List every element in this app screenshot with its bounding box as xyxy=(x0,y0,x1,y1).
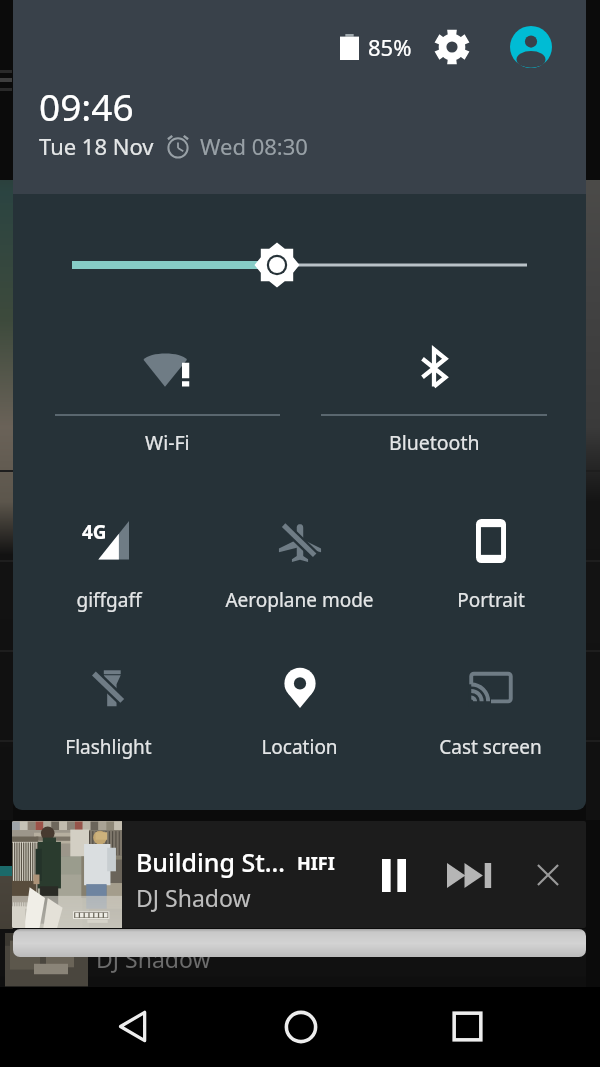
button[interactable]: Flashlight xyxy=(13,665,204,760)
button[interactable]: Settings xyxy=(430,25,474,69)
staticText: Location xyxy=(261,734,338,760)
button[interactable]: Pause xyxy=(368,848,420,902)
button[interactable]: Dismiss xyxy=(524,848,572,902)
staticText: 85% xyxy=(368,32,412,62)
button[interactable]: Recent apps xyxy=(431,990,503,1062)
button[interactable]: 4G xyxy=(13,518,204,613)
button[interactable]: User profile xyxy=(509,25,553,69)
button[interactable]: Next track xyxy=(441,848,499,902)
staticText: giffgaff xyxy=(76,587,142,613)
staticText: Wed 08:30 xyxy=(200,131,308,161)
button[interactable]: Bluetooth xyxy=(321,338,547,456)
button[interactable]: Cast screen xyxy=(395,665,586,760)
staticText: Wi-Fi xyxy=(145,429,190,456)
button[interactable]: Portrait xyxy=(395,518,586,613)
staticText: Aeroplane mode xyxy=(225,587,374,613)
staticText: Building St… xyxy=(136,845,286,879)
button[interactable]: Home xyxy=(265,991,337,1063)
staticText: HIFI xyxy=(297,851,335,876)
button[interactable]: Brightness xyxy=(13,228,586,304)
button[interactable]: Back xyxy=(97,990,169,1062)
staticText: Tue 18 Nov xyxy=(39,131,154,161)
staticText: 4G xyxy=(82,519,107,545)
staticText: Flashlight xyxy=(65,734,152,760)
button[interactable]: Aeroplane mode xyxy=(204,518,395,613)
staticText: Cast screen xyxy=(439,734,542,760)
button[interactable]: 09:46 xyxy=(39,81,134,131)
button[interactable]: Building St… xyxy=(12,821,586,928)
button[interactable]: DJ Shadow xyxy=(0,929,586,987)
staticText: Portrait xyxy=(457,587,525,613)
staticText: Bluetooth xyxy=(389,429,480,456)
staticText: DJ Shadow xyxy=(96,943,211,974)
staticText: 09:46 xyxy=(39,81,134,131)
button[interactable]: Location xyxy=(204,665,395,760)
button[interactable]: Tue 18 Nov xyxy=(39,131,308,161)
button[interactable]: Wi-Fi xyxy=(55,338,280,456)
staticText: DJ Shadow xyxy=(136,882,251,913)
